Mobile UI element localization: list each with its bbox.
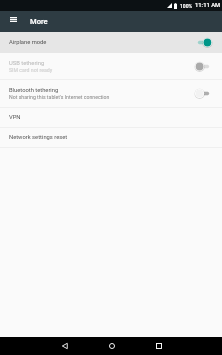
button[interactable]: Recent apps <box>135 337 182 355</box>
staticText: VPN <box>9 114 21 121</box>
button[interactable]: Back <box>41 337 88 355</box>
staticText: USB tethering <box>9 60 45 67</box>
button[interactable]: Airplane mode <box>0 32 222 53</box>
staticText: Not sharing this tablet's Internet conne… <box>9 94 110 100</box>
button[interactable]: VPN <box>0 108 222 127</box>
staticText: Network settings reset <box>9 134 68 141</box>
button[interactable]: Open navigation drawer <box>0 11 24 32</box>
staticText: Airplane mode <box>9 39 47 46</box>
staticText: More <box>30 17 48 26</box>
staticText: 11:11 AM <box>195 2 221 9</box>
staticText: Bluetooth tethering <box>9 87 59 94</box>
staticText: SIM card not ready <box>9 67 53 73</box>
staticText: 100% <box>180 3 193 9</box>
button[interactable]: Network settings reset <box>0 128 222 147</box>
button[interactable]: Home <box>88 337 135 355</box>
button[interactable]: USB tethering <box>0 53 222 79</box>
button[interactable]: Bluetooth tethering <box>0 80 222 107</box>
